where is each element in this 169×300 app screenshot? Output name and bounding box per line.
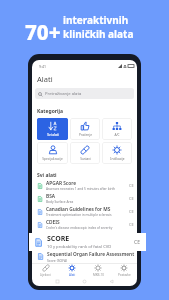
button[interactable]: Alati	[59, 264, 85, 277]
staticText: Praćenje	[79, 133, 92, 137]
staticText: 10 y probability rank of fatal CVD	[47, 244, 112, 250]
staticText: Svi alati	[47, 133, 59, 137]
staticText: Specijalizacije	[42, 157, 63, 161]
staticText: SCORE	[47, 234, 70, 244]
button[interactable]: Indikacije	[102, 142, 132, 164]
button[interactable]: APGAR Score	[37, 179, 134, 192]
button[interactable]: BSA	[37, 192, 134, 205]
button[interactable]: Praćenje	[70, 118, 100, 140]
button[interactable]: Specijalizacije	[37, 142, 68, 164]
button[interactable]: CDEIS	[37, 218, 134, 231]
staticText: 9:41	[39, 64, 46, 69]
button[interactable]: Lijekovi	[32, 264, 59, 277]
staticText: CDEIS	[46, 219, 60, 226]
staticText: Lijekovi	[40, 273, 51, 277]
staticText: Body Surface Area	[46, 200, 74, 204]
staticText: Assesses neonates 1 and 5 minutes after …	[46, 187, 115, 191]
staticText: Canadian Guidelines for MS	[46, 206, 111, 213]
staticText: CE	[129, 196, 134, 201]
staticText: interaktivnih	[63, 13, 129, 27]
button[interactable]: Svi alati	[37, 118, 68, 140]
staticText: CE	[134, 239, 140, 246]
staticText: Sustavi	[80, 157, 91, 161]
button[interactable]: Sequential Organ Failure Assessment	[37, 250, 135, 263]
button[interactable]: MKB-10	[85, 264, 111, 277]
staticText: Kategorija	[37, 108, 63, 115]
staticText: Crohn's disease endoscopic index of seve…	[46, 226, 113, 230]
staticText: CE	[129, 209, 134, 214]
staticText: 10 y probability rank of fatal CVD	[46, 239, 95, 243]
button[interactable]: Canadian Guidelines for MS	[37, 205, 134, 218]
staticText: kliničkih alata	[63, 27, 134, 41]
staticText: CE	[129, 183, 134, 188]
staticText: MKB-10	[93, 273, 104, 277]
button[interactable]: Pretraživanje alata	[35, 88, 134, 99]
staticText: Pretraživanje alata	[45, 91, 82, 97]
staticText: SCORE	[46, 232, 62, 239]
staticText: Score (SOFA)	[47, 258, 68, 263]
staticText: APGAR Score	[46, 180, 77, 187]
staticText: Indikacije	[110, 157, 125, 161]
staticText: Treatment optimization in multiple scler…	[46, 213, 112, 217]
staticText: 70+	[25, 18, 61, 46]
button[interactable]: A/C	[102, 118, 132, 140]
staticText: A/C	[114, 133, 120, 137]
staticText: Alati	[37, 74, 53, 84]
staticText: Postavke	[118, 273, 131, 277]
staticText: BSA	[46, 193, 56, 200]
staticText: Alati	[69, 273, 76, 277]
button[interactable]: SCORE	[29, 233, 146, 251]
staticText: CE	[129, 222, 134, 227]
button[interactable]: Postavke	[111, 264, 137, 277]
button[interactable]: Sustavi	[70, 142, 100, 164]
staticText: Svi alati	[37, 172, 57, 179]
button[interactable]: SCORE	[37, 231, 134, 244]
staticText: Sequential Organ Failure Assessment	[47, 251, 135, 258]
